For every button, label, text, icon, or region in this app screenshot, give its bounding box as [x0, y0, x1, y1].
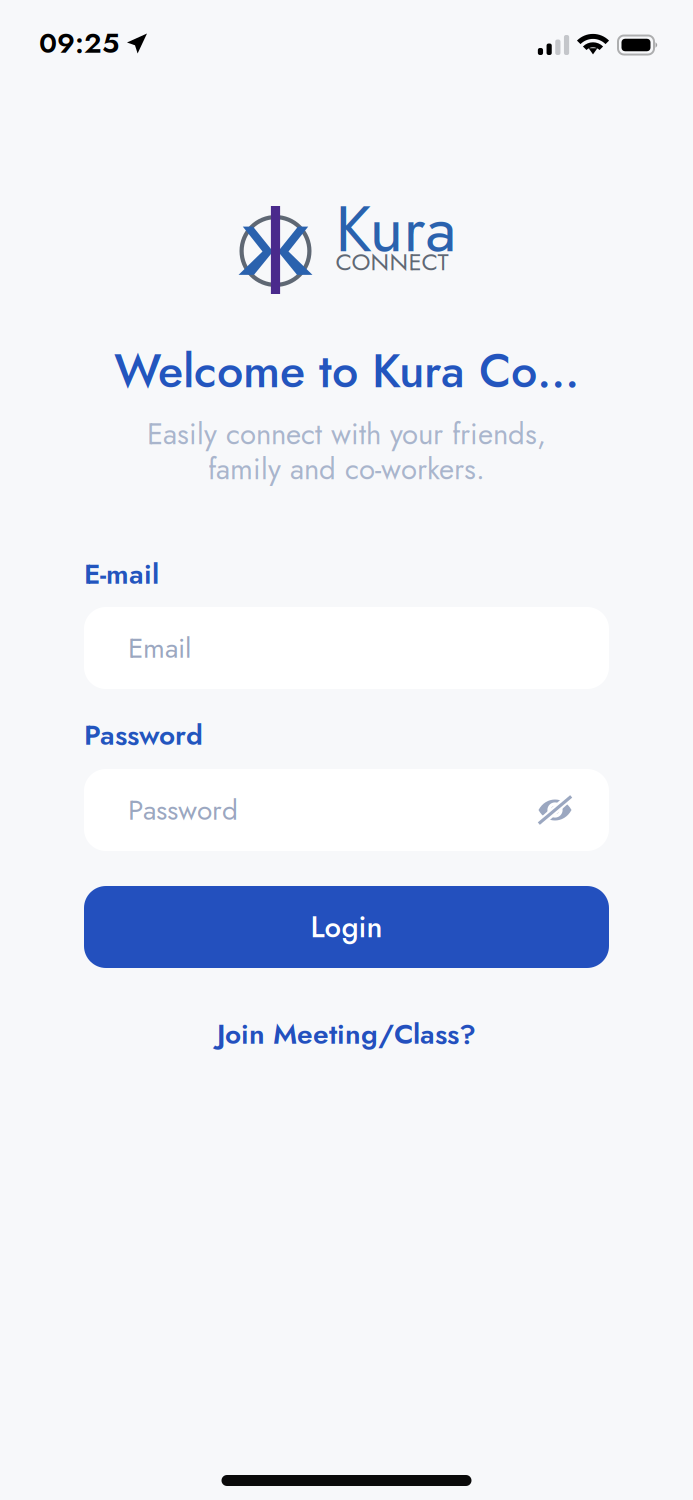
staticText: family and co-workers.	[208, 448, 485, 490]
staticText: Welcome to Kura Co…	[114, 337, 579, 405]
staticText: Kura	[335, 183, 456, 275]
staticText: 09:25	[39, 23, 119, 63]
button[interactable]: Show password	[537, 795, 573, 825]
staticText: Password	[128, 790, 238, 830]
staticText: Easily connect with your friends,	[147, 413, 546, 455]
staticText: E-mail	[84, 554, 159, 594]
staticText: Login	[310, 906, 382, 948]
button[interactable]: Join Meeting/Class?	[84, 1012, 609, 1056]
staticText: Join Meeting/Class?	[217, 1014, 476, 1054]
staticText: Password	[84, 715, 203, 755]
button[interactable]: Login	[84, 886, 609, 968]
staticText: CONNECT	[335, 245, 448, 279]
staticText: Email	[128, 628, 191, 668]
